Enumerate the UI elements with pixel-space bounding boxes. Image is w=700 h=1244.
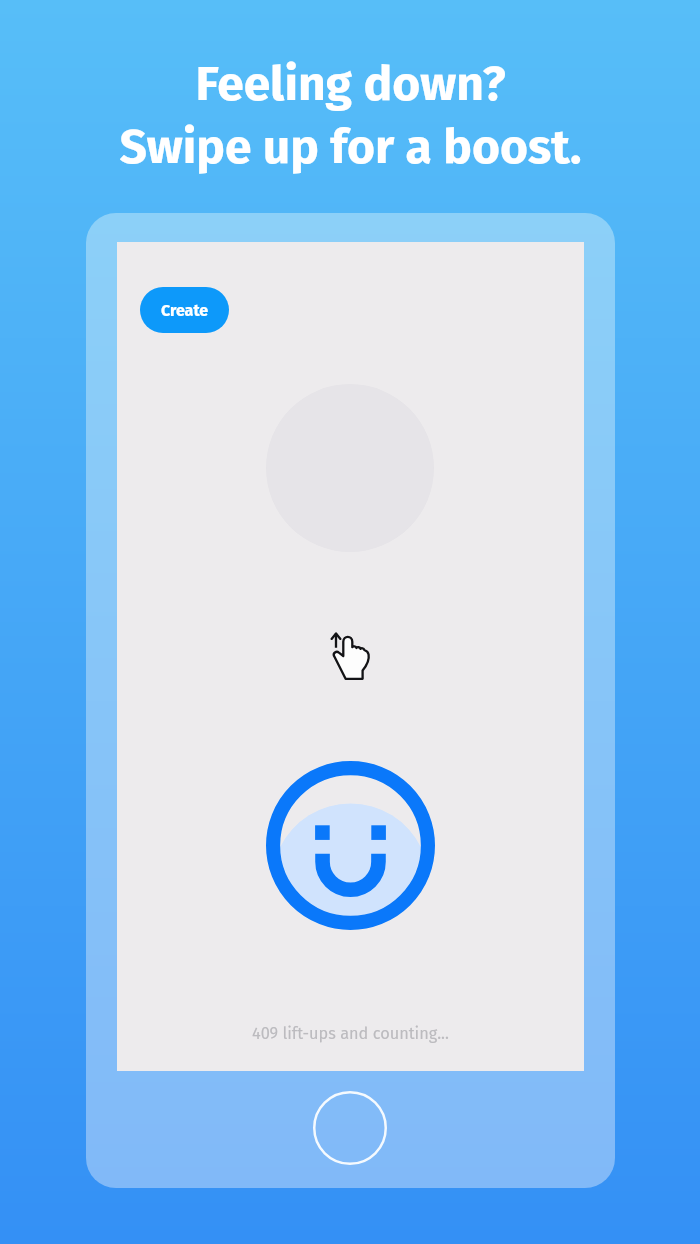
button[interactable]: Create: [140, 287, 229, 333]
staticText: Swipe up for a boost.: [119, 118, 582, 176]
button[interactable]: Swipe up: [331, 632, 375, 684]
staticText: Create: [161, 301, 209, 320]
staticText: 409 lift-ups and counting...: [252, 1024, 449, 1044]
staticText: Feeling down?: [195, 55, 506, 113]
button[interactable]: Home: [313, 1091, 387, 1165]
